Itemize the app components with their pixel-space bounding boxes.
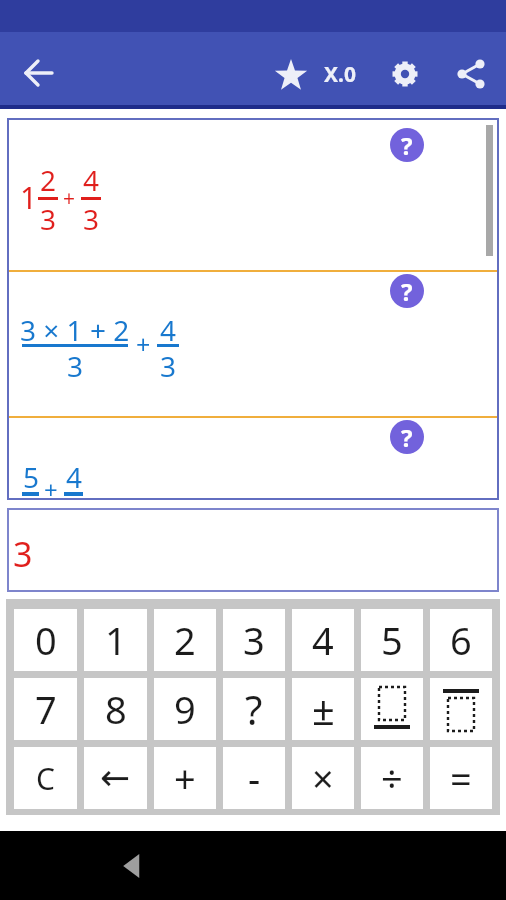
- button[interactable]: [271, 54, 311, 94]
- staticText: 4: [66, 458, 83, 496]
- button[interactable]: ±: [292, 678, 354, 740]
- button[interactable]: [361, 678, 423, 740]
- button[interactable]: ×: [292, 747, 354, 809]
- button[interactable]: [22, 55, 58, 91]
- staticText: 4: [160, 311, 177, 349]
- staticText: +: [44, 473, 58, 500]
- button[interactable]: +: [154, 747, 216, 809]
- staticText: ?: [401, 129, 413, 162]
- staticText: ×: [312, 752, 334, 804]
- button[interactable]: C: [14, 747, 77, 809]
- staticText: 5: [381, 614, 403, 666]
- staticText: 3: [83, 200, 100, 238]
- button[interactable]: ?: [390, 420, 424, 454]
- staticText: C: [36, 758, 55, 799]
- button[interactable]: 1: [84, 609, 147, 671]
- staticText: 3: [243, 614, 265, 666]
- staticText: 7: [35, 683, 57, 735]
- button[interactable]: 0: [14, 609, 77, 671]
- staticText: 5: [23, 458, 40, 496]
- staticText: +: [136, 327, 151, 361]
- button[interactable]: 7: [14, 678, 77, 740]
- staticText: ±: [312, 682, 335, 736]
- button[interactable]: [430, 678, 492, 740]
- staticText: 6: [450, 614, 472, 666]
- button[interactable]: 6: [430, 609, 492, 671]
- staticText: 2: [174, 614, 196, 666]
- staticText: ?: [245, 682, 263, 736]
- button[interactable]: ?: [390, 274, 424, 308]
- staticText: 1: [20, 177, 38, 218]
- button[interactable]: [385, 54, 425, 94]
- staticText: 4: [83, 161, 100, 199]
- staticText: 0: [35, 614, 57, 666]
- button[interactable]: 3: [223, 609, 285, 671]
- staticText: ?: [401, 421, 413, 454]
- staticText: 2: [40, 161, 57, 199]
- staticText: 3: [40, 200, 57, 238]
- staticText: 9: [174, 683, 196, 735]
- staticText: ?: [401, 275, 413, 308]
- button[interactable]: ?: [390, 128, 424, 162]
- button[interactable]: X.0: [324, 60, 356, 89]
- staticText: X.0: [324, 60, 356, 89]
- button[interactable]: 9: [154, 678, 216, 740]
- button[interactable]: ←: [84, 747, 147, 809]
- button[interactable]: -: [223, 747, 285, 809]
- button[interactable]: 4: [292, 609, 354, 671]
- staticText: +: [63, 184, 76, 213]
- staticText: 3: [160, 347, 177, 385]
- button[interactable]: 5: [361, 609, 423, 671]
- staticText: 8: [105, 683, 127, 735]
- staticText: +: [174, 752, 196, 804]
- button[interactable]: ÷: [361, 747, 423, 809]
- staticText: ÷: [381, 752, 403, 804]
- button[interactable]: ?: [223, 678, 285, 740]
- button[interactable]: =: [430, 747, 492, 809]
- button[interactable]: 8: [84, 678, 147, 740]
- staticText: 3: [13, 531, 33, 577]
- button[interactable]: 2: [154, 609, 216, 671]
- staticText: =: [450, 752, 472, 804]
- staticText: 4: [312, 614, 334, 666]
- button[interactable]: [451, 54, 491, 94]
- staticText: 1: [105, 614, 127, 666]
- staticText: ←: [100, 757, 131, 799]
- staticText: -: [248, 752, 261, 804]
- staticText: 3: [67, 347, 84, 385]
- button[interactable]: [116, 848, 152, 884]
- staticText: 3 × 1 + 2: [20, 311, 130, 349]
